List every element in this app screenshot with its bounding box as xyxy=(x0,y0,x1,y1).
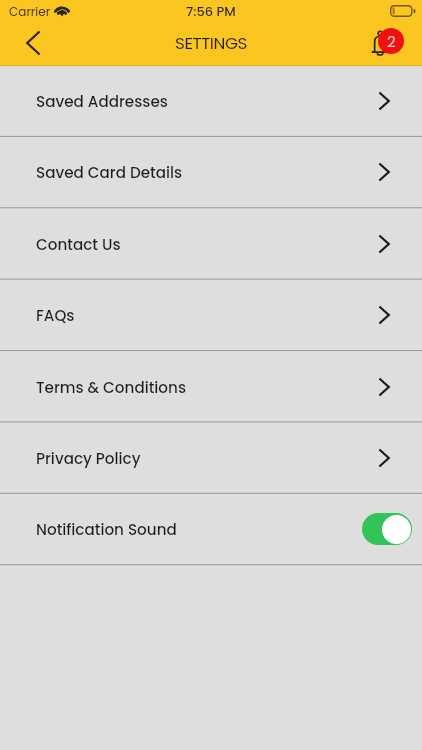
staticText: Contact Us xyxy=(36,234,121,255)
button[interactable]: Saved Addresses xyxy=(0,65,422,136)
staticText: Saved Addresses xyxy=(36,91,168,112)
button[interactable]: Saved Card Details xyxy=(0,136,422,207)
button[interactable]: Notifications xyxy=(364,20,410,64)
staticText: Notification Sound xyxy=(36,519,177,540)
staticText: 7:56 PM xyxy=(186,2,236,20)
staticText: 2 xyxy=(387,31,396,52)
button[interactable]: Terms & Conditions xyxy=(0,351,422,422)
staticText: FAQs xyxy=(36,305,75,326)
button[interactable]: FAQs xyxy=(0,279,422,350)
staticText: Saved Card Details xyxy=(36,162,183,183)
staticText: SETTINGS xyxy=(175,31,247,55)
button[interactable]: Privacy Policy xyxy=(0,422,422,493)
button[interactable]: Contact Us xyxy=(0,208,422,279)
staticText: Privacy Policy xyxy=(36,448,141,469)
staticText: Terms & Conditions xyxy=(36,377,187,398)
button[interactable]: Back xyxy=(11,21,55,65)
button[interactable]: Notification Sound xyxy=(0,493,422,564)
staticText: Carrier xyxy=(9,3,51,20)
